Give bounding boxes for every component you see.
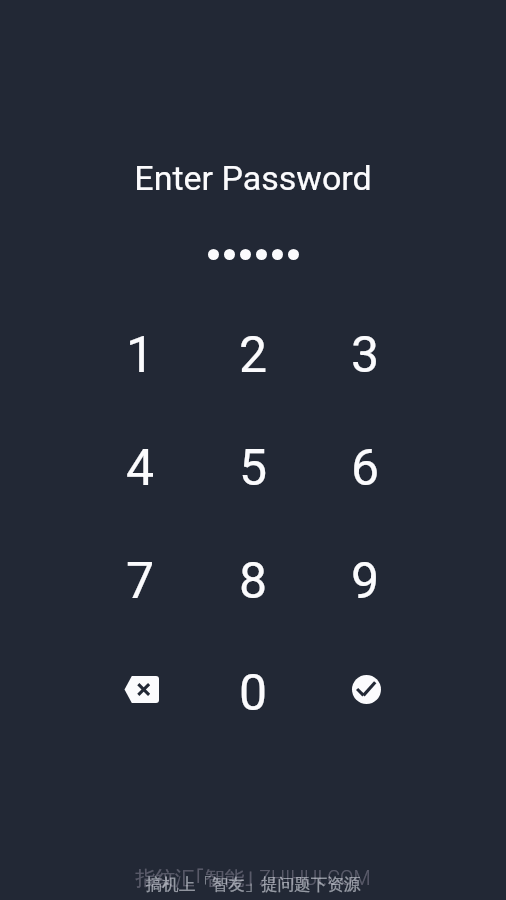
staticText: 指纹汇｢智能｣ ZHIHUI.COM (0, 866, 506, 891)
staticText: 0 (239, 664, 268, 723)
staticText: 3 (351, 326, 380, 385)
button[interactable]: 4 (97, 425, 183, 511)
button[interactable]: 7 (97, 538, 183, 624)
button[interactable]: 2 (210, 312, 296, 398)
button[interactable]: 8 (210, 538, 296, 624)
button[interactable]: 5 (210, 425, 296, 511)
button[interactable]: 1 (97, 312, 183, 398)
button[interactable]: 3 (322, 312, 408, 398)
staticText: 6 (351, 439, 380, 498)
button[interactable]: 0 (210, 650, 296, 736)
button[interactable]: 9 (322, 538, 408, 624)
staticText: 1 (126, 326, 155, 385)
staticText: 8 (239, 552, 268, 611)
staticText: 5 (239, 439, 268, 498)
button[interactable]: 6 (322, 425, 408, 511)
staticText: 9 (351, 552, 380, 611)
button[interactable]: Confirm password (322, 650, 408, 736)
staticText: 2 (239, 326, 268, 385)
staticText: 4 (126, 439, 155, 498)
button[interactable]: Delete (97, 650, 183, 736)
staticText: 7 (126, 552, 155, 611)
staticText: 搞机上「智友」提问题下资源 (0, 874, 506, 895)
staticText: Enter Password (0, 158, 506, 198)
